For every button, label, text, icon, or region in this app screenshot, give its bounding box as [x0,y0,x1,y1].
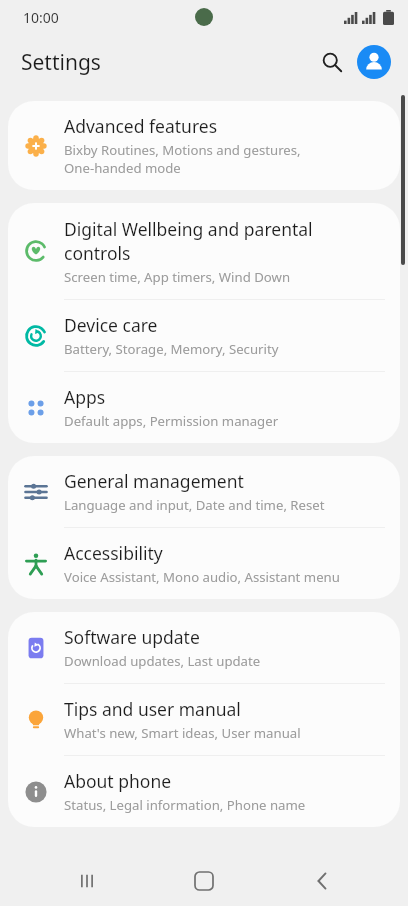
button[interactable]: Tips and user manual [8,684,400,755]
staticText: Advanced features [64,114,218,138]
staticText: Status, Legal information, Phone name [64,796,306,814]
staticText: Settings [21,48,101,77]
button[interactable]: Accessibility [8,528,400,599]
button[interactable]: About phone [8,756,400,827]
button[interactable]: Search [313,43,351,81]
staticText: About phone [64,769,172,793]
staticText: Bixby Routines, Motions and gestures, On… [64,141,301,177]
button[interactable]: Software update [8,612,400,683]
staticText: What's new, Smart ideas, User manual [64,724,301,742]
button[interactable]: Digital Wellbeing and parental controls [8,203,400,299]
staticText: Download updates, Last update [64,652,261,670]
button[interactable]: Home [173,856,235,906]
staticText: Voice Assistant, Mono audio, Assistant m… [64,568,340,586]
staticText: Default apps, Permission manager [64,412,279,430]
button[interactable]: General management [8,456,400,527]
staticText: General management [64,469,244,493]
button[interactable]: Back [291,856,353,906]
staticText: Apps [64,385,106,409]
button[interactable]: Apps [8,372,400,443]
button[interactable]: Recents [56,856,118,906]
staticText: 10:00 [23,8,59,27]
staticText: Tips and user manual [64,697,241,721]
staticText: Digital Wellbeing and parental controls [64,217,313,265]
button[interactable]: Device care [8,300,400,371]
button[interactable]: Account [357,45,391,79]
staticText: Device care [64,313,158,337]
staticText: Accessibility [64,541,163,565]
staticText: Screen time, App timers, Wind Down [64,268,291,286]
staticText: Software update [64,625,200,649]
staticText: Language and input, Date and time, Reset [64,496,325,514]
staticText: Battery, Storage, Memory, Security [64,340,279,358]
button[interactable]: Advanced features [8,101,400,190]
